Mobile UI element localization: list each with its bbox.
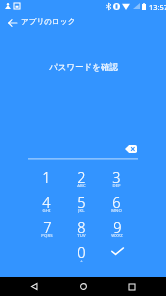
- staticText: MNO: [111, 208, 122, 213]
- button[interactable]: Back: [3, 14, 21, 32]
- staticText: 6: [112, 192, 121, 212]
- staticText: JKL: [78, 208, 85, 213]
- button[interactable]: 6: [99, 192, 134, 217]
- staticText: WXYZ: [111, 233, 123, 238]
- staticText: TUV: [77, 233, 86, 238]
- staticText: 8: [77, 217, 86, 237]
- button[interactable]: Back: [19, 277, 49, 296]
- button[interactable]: Backspace: [121, 141, 141, 157]
- staticText: 13:57: [149, 2, 166, 12]
- button[interactable]: 4: [29, 192, 64, 217]
- button[interactable]: 1: [29, 167, 64, 192]
- staticText: PQRS: [41, 233, 53, 238]
- button[interactable]: Confirm: [99, 242, 134, 267]
- staticText: +: [80, 258, 83, 263]
- staticText: DEF: [112, 183, 121, 188]
- button[interactable]: 5: [64, 192, 99, 217]
- button[interactable]: 9: [99, 217, 134, 242]
- button[interactable]: 2: [64, 167, 99, 192]
- staticText: 1: [42, 167, 51, 187]
- staticText: GHI: [42, 208, 51, 213]
- staticText: 7: [43, 217, 52, 237]
- staticText: 0: [77, 242, 86, 262]
- staticText: パスワードを確認: [49, 62, 118, 73]
- staticText: ABC: [77, 183, 86, 188]
- staticText: 4: [42, 192, 51, 212]
- button[interactable]: 0: [64, 242, 99, 267]
- button[interactable]: 7: [29, 217, 64, 242]
- staticText: 2: [77, 167, 86, 187]
- staticText: 3: [112, 167, 121, 187]
- button[interactable]: Recents: [117, 277, 147, 296]
- button[interactable]: 3: [99, 167, 134, 192]
- button[interactable]: Home: [68, 277, 98, 296]
- button[interactable]: 8: [64, 217, 99, 242]
- staticText: 5: [77, 192, 86, 212]
- staticText: アプリのロック: [21, 17, 76, 27]
- staticText: 9: [113, 217, 122, 237]
